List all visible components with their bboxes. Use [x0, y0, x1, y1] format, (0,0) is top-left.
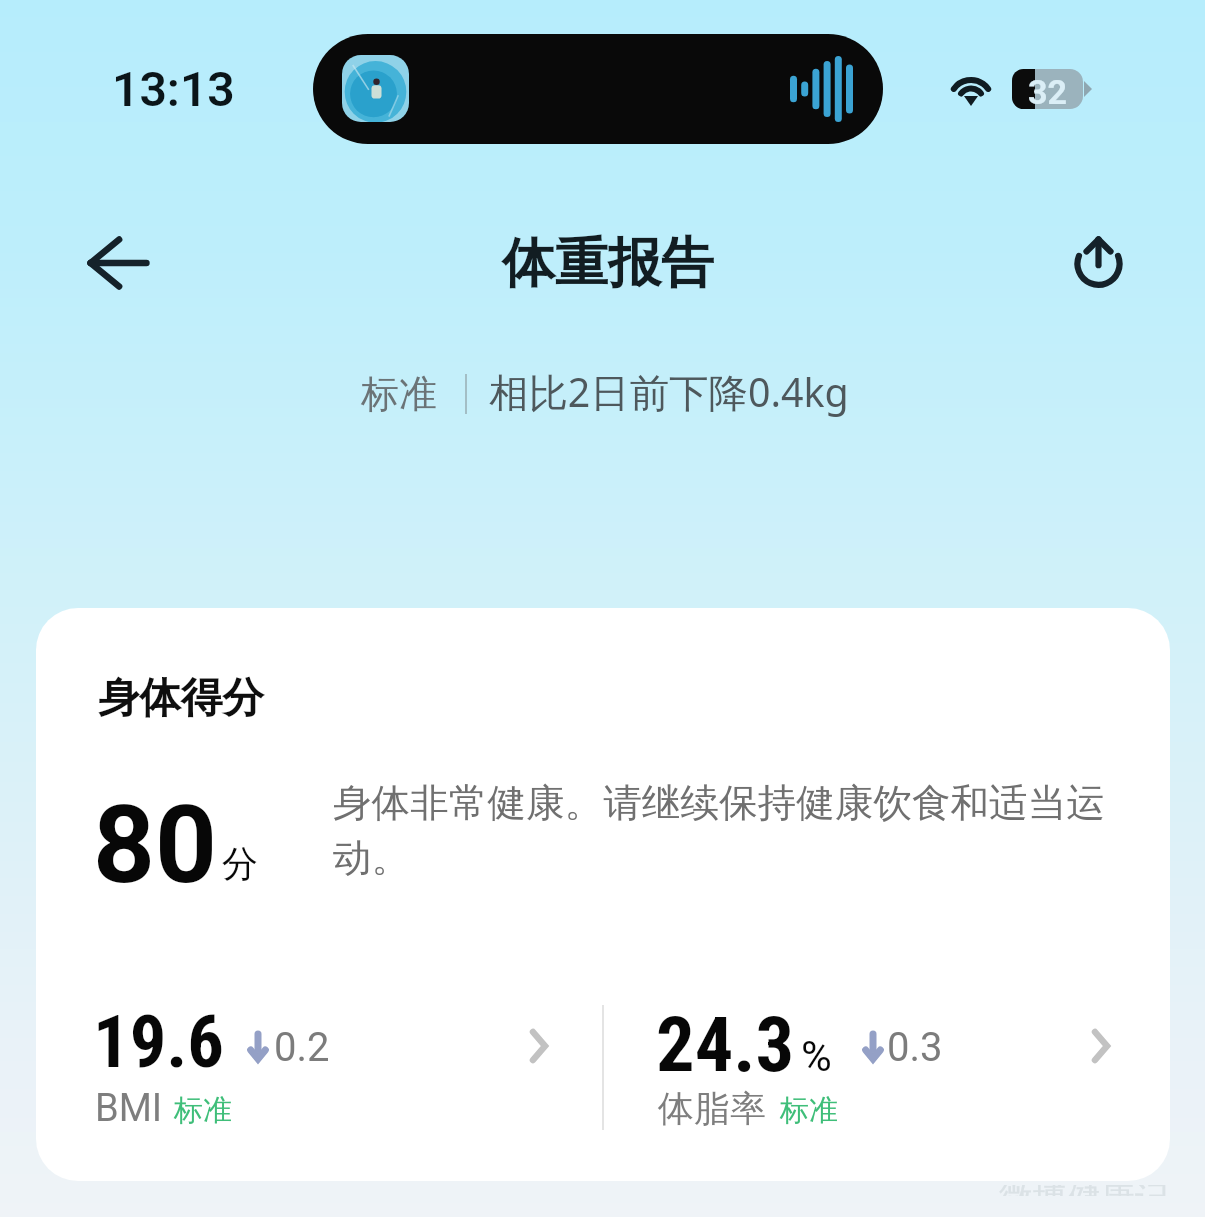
staticText: 80	[93, 782, 217, 909]
staticText: 0.3	[887, 1024, 943, 1071]
staticText: 身体非常健康。请继续保持健康饮食和适当运动。	[333, 779, 1133, 883]
button[interactable]: Share	[1049, 210, 1147, 308]
staticText: BMI	[95, 1086, 163, 1131]
staticText: 分	[222, 841, 258, 886]
staticText: 标准	[780, 1092, 838, 1129]
button[interactable]: 24.3	[660, 993, 1160, 1143]
staticText: 相比2日前下降0.4kg	[489, 365, 849, 419]
staticText: 标准	[361, 370, 437, 418]
staticText: 13:13	[112, 61, 235, 117]
button[interactable]: 19.6	[98, 993, 598, 1143]
staticText: %	[801, 1032, 832, 1081]
staticText: 0.2	[274, 1024, 330, 1071]
staticText: 32	[1028, 72, 1068, 112]
staticText: 身体得分	[98, 672, 264, 724]
button[interactable]: Back	[70, 215, 166, 311]
staticText: 标准	[174, 1092, 232, 1129]
staticText: 体脂率	[658, 1086, 766, 1131]
staticText: 19.6	[93, 1000, 224, 1085]
staticText: 体重报告	[502, 230, 714, 297]
staticText: 24.3	[656, 1000, 795, 1090]
staticText: 微博健康记录	[999, 1185, 1197, 1196]
